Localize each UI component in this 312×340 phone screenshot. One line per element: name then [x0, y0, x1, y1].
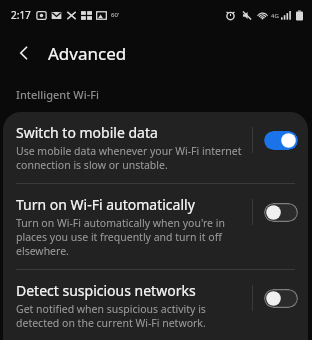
- button[interactable]: Switch to mobile data: [3, 112, 308, 183]
- staticText: Get notified when suspicious activity is…: [16, 302, 246, 329]
- button[interactable]: On: [264, 131, 298, 150]
- staticText: Switch to mobile data: [16, 123, 158, 142]
- staticText: Turn on Wi-Fi automatically: [16, 195, 195, 214]
- staticText: Use mobile data whenever your Wi-Fi inte…: [16, 144, 246, 172]
- button[interactable]: Off: [264, 203, 298, 222]
- staticText: Detect suspicious networks: [16, 281, 196, 300]
- staticText: Advanced: [48, 42, 127, 65]
- staticText: 2:17: [11, 8, 31, 22]
- button[interactable]: Off: [264, 289, 298, 308]
- staticText: 60': [111, 11, 120, 19]
- button[interactable]: Turn on Wi-Fi automatically: [3, 184, 308, 269]
- button[interactable]: Detect suspicious networks: [3, 270, 308, 340]
- staticText: Intelligent Wi-Fi: [16, 87, 99, 102]
- staticText: Turn on Wi-Fi automatically when you're …: [16, 216, 246, 258]
- button[interactable]: Back: [8, 37, 40, 69]
- staticText: 4G: [271, 12, 279, 20]
